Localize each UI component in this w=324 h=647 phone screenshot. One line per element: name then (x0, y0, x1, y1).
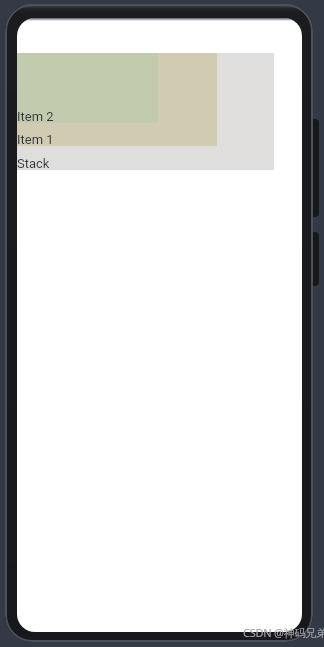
button[interactable]: Item 1 (17, 53, 217, 146)
staticText: Stack (17, 156, 50, 171)
staticText: Item 2 (17, 109, 54, 124)
button[interactable]: Item 2 (17, 53, 158, 123)
button[interactable]: Stack (17, 53, 274, 170)
staticText: CSDN @神码兄弟 (243, 625, 324, 640)
staticText: Item 1 (17, 132, 54, 147)
